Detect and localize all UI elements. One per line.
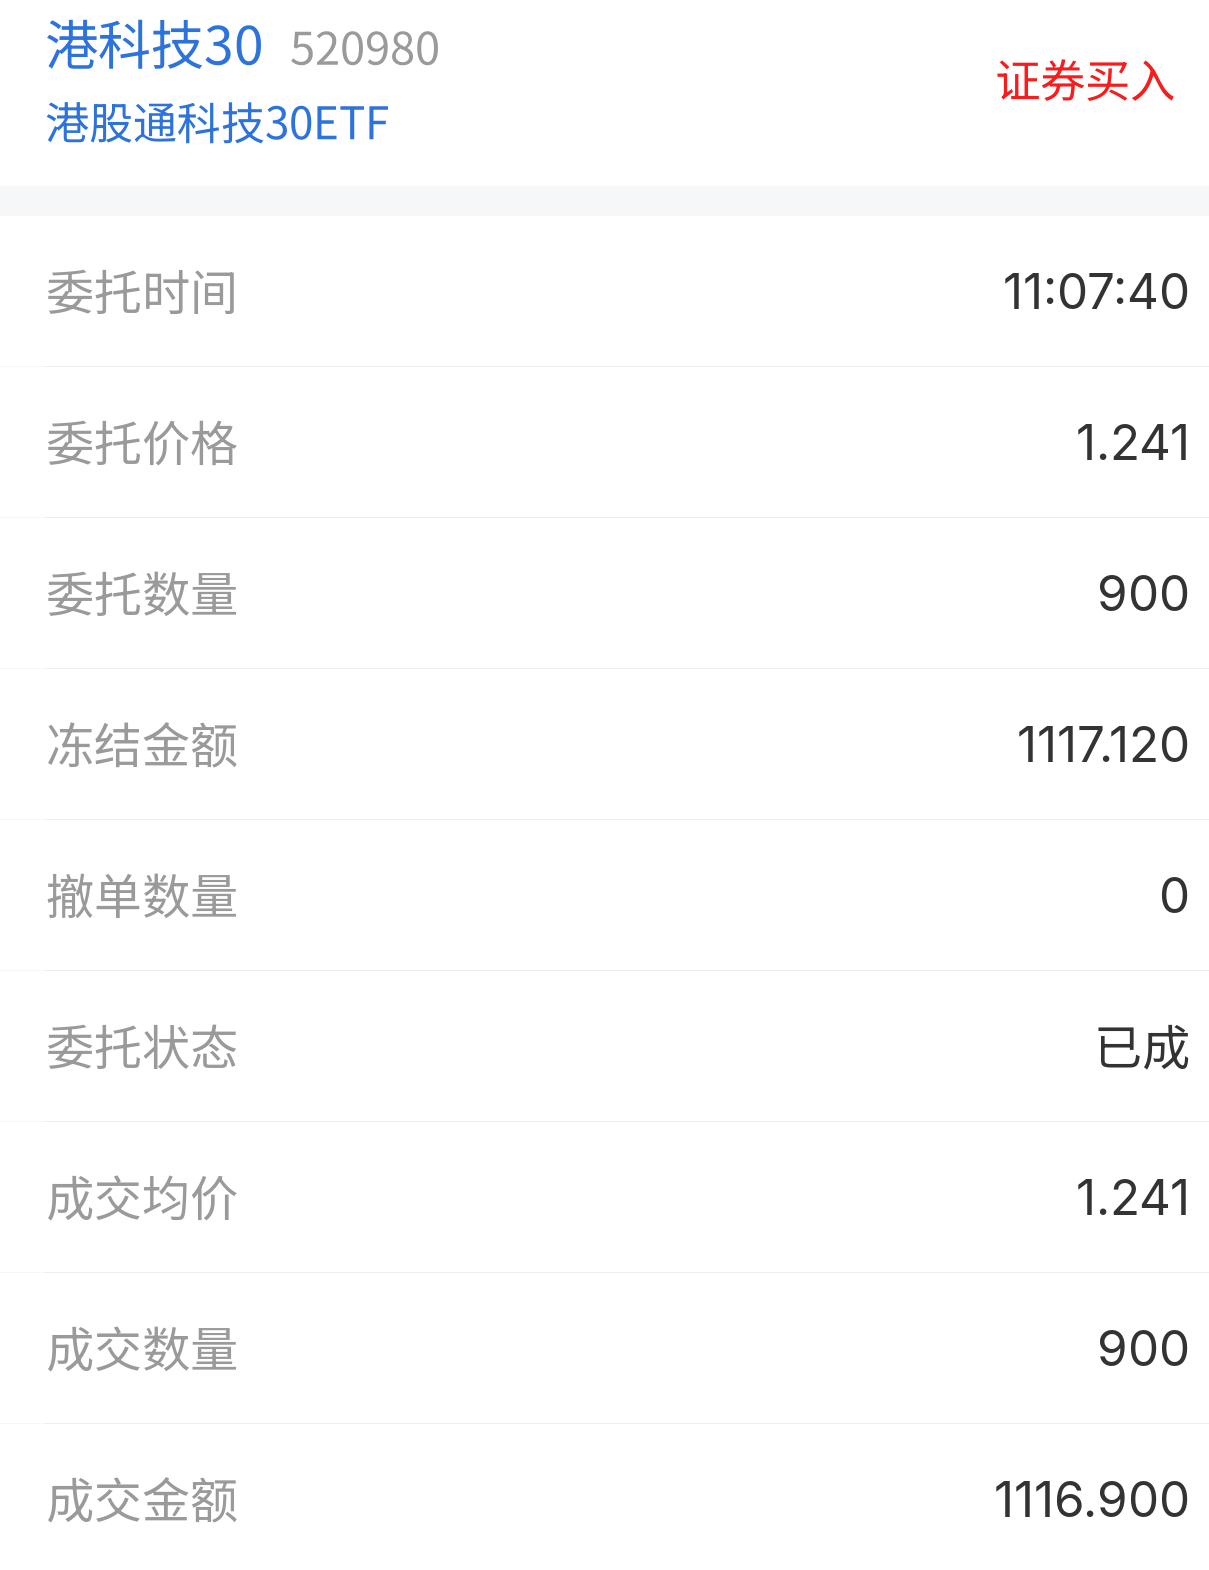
button[interactable]: 委托价格 — [0, 367, 1209, 518]
staticText: 11:07:40 — [1003, 261, 1190, 321]
button[interactable]: 撤单数量 — [0, 820, 1209, 971]
staticText: 成交数量 — [46, 1311, 238, 1381]
staticText: 1.241 — [1076, 1167, 1190, 1227]
staticText: 1117.120 — [1017, 714, 1190, 774]
staticText: 委托时间 — [46, 254, 238, 324]
staticText: 委托数量 — [46, 556, 238, 626]
staticText: 港科技30 — [45, 3, 264, 80]
button[interactable]: 成交均价 — [0, 1122, 1209, 1273]
button[interactable]: 港科技30 — [0, 0, 464, 144]
button[interactable]: 成交金额 — [0, 1424, 1209, 1570]
staticText: 成交均价 — [46, 1160, 238, 1230]
staticText: 撤单数量 — [46, 858, 238, 928]
button[interactable]: 成交数量 — [0, 1273, 1209, 1424]
button[interactable]: 冻结金额 — [0, 669, 1209, 820]
staticText: 1116.900 — [994, 1469, 1190, 1529]
button[interactable]: 委托数量 — [0, 518, 1209, 669]
staticText: 成交金额 — [46, 1462, 238, 1532]
button[interactable]: 委托状态 — [0, 971, 1209, 1122]
staticText: 900 — [1097, 563, 1190, 623]
button[interactable]: 委托时间 — [0, 216, 1209, 367]
staticText: 520980 — [290, 12, 440, 78]
staticText: 冻结金额 — [46, 707, 238, 777]
staticText: 1.241 — [1076, 412, 1190, 472]
staticText: 0 — [1159, 865, 1190, 925]
staticText: 委托价格 — [46, 405, 238, 475]
staticText: 已成 — [1094, 1009, 1190, 1079]
staticText: 证券买入 — [995, 45, 1175, 111]
staticText: 港股通科技30ETF — [45, 88, 389, 152]
staticText: 900 — [1097, 1318, 1190, 1378]
staticText: 委托状态 — [46, 1009, 238, 1079]
